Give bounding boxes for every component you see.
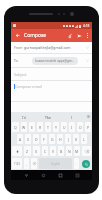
button[interactable]: Voice input (31, 158, 37, 169)
staticText: T (47, 125, 49, 130)
button[interactable]: F (41, 134, 47, 144)
button[interactable]: D (33, 134, 39, 144)
staticText: I (71, 115, 73, 119)
staticText: huawei mobile apps@gm... (35, 59, 75, 63)
button[interactable]: Shift (12, 146, 22, 156)
button[interactable]: L (81, 134, 87, 144)
staticText: English (51, 162, 61, 166)
button[interactable]: O (77, 122, 83, 132)
button[interactable]: huawei mobile apps@gm... (32, 57, 78, 65)
button[interactable]: U (61, 122, 67, 132)
button[interactable]: R (37, 122, 43, 132)
staticText: N (68, 149, 71, 154)
staticText: Q (14, 125, 17, 130)
button[interactable]: G (49, 134, 55, 144)
staticText: V (52, 149, 55, 154)
staticText: Z (26, 149, 29, 154)
staticText: Subject (14, 72, 27, 77)
button[interactable]: From (11, 42, 92, 53)
staticText: I (71, 125, 73, 130)
button[interactable]: Y (53, 122, 59, 132)
button[interactable]: Space (39, 158, 72, 169)
button[interactable]: T (45, 122, 51, 132)
button[interactable]: Attach file (66, 31, 75, 40)
staticText: W (22, 125, 26, 130)
staticText: gurnoopatleejla@gmail.com (24, 45, 71, 50)
staticText: 4:18 (83, 24, 90, 28)
button[interactable]: Subject (11, 68, 92, 80)
staticText: , (26, 162, 27, 166)
staticText: D (35, 137, 38, 142)
button[interactable]: Q (12, 122, 19, 132)
button[interactable]: C (42, 146, 48, 156)
button[interactable]: Recent apps (56, 171, 64, 179)
button[interactable]: Back (22, 171, 30, 179)
button[interactable]: The (36, 112, 60, 121)
staticText: K (75, 137, 78, 142)
staticText: ?123 (14, 162, 20, 166)
staticText: The (45, 115, 51, 119)
button[interactable]: Home (39, 171, 47, 179)
staticText: X (35, 149, 38, 154)
staticText: . (76, 162, 77, 166)
staticText: E (31, 125, 33, 130)
staticText: M (75, 149, 79, 154)
button[interactable]: A (17, 134, 23, 144)
button[interactable]: ?123 (12, 158, 22, 169)
staticText: To (14, 58, 18, 63)
button[interactable]: Backspace (82, 146, 91, 156)
button[interactable]: Send (75, 31, 84, 40)
button[interactable]: Back (13, 31, 22, 40)
button[interactable]: S (25, 134, 31, 144)
button[interactable]: X (33, 146, 40, 156)
button[interactable]: Keyboard settings (84, 112, 92, 121)
button[interactable]: I'd (11, 112, 36, 121)
staticText: U (63, 125, 66, 130)
staticText: R (39, 125, 42, 130)
button[interactable]: I (60, 112, 84, 121)
button[interactable]: N (66, 146, 72, 156)
staticText: Compose email (15, 84, 42, 89)
staticText: L (83, 137, 85, 142)
button[interactable]: V (50, 146, 56, 156)
button[interactable]: J (65, 134, 71, 144)
staticText: I'd (22, 115, 26, 119)
staticText: P (87, 125, 90, 130)
button[interactable]: H (57, 134, 63, 144)
button[interactable]: W (21, 122, 27, 132)
button[interactable]: To (11, 54, 92, 67)
staticText: A (19, 137, 22, 142)
staticText: B (60, 149, 63, 154)
button[interactable]: More options (84, 32, 91, 39)
button[interactable]: Enter (80, 157, 92, 170)
button[interactable]: Compose email (11, 81, 92, 101)
staticText: From (14, 45, 23, 50)
button[interactable]: P (85, 122, 91, 132)
button[interactable]: E (29, 122, 35, 132)
button[interactable]: Hide keyboard (73, 171, 81, 179)
button[interactable]: Z (24, 146, 31, 156)
button[interactable]: K (73, 134, 79, 144)
staticText: G (51, 137, 54, 142)
staticText: S (27, 137, 29, 142)
staticText: J (68, 137, 69, 142)
staticText: F (43, 137, 45, 142)
staticText: O (79, 125, 82, 130)
button[interactable]: , (24, 158, 29, 169)
button[interactable]: I (69, 122, 75, 132)
staticText: Compose (24, 32, 47, 39)
staticText: H (59, 137, 62, 142)
staticText: C (44, 149, 47, 154)
button[interactable]: B (58, 146, 64, 156)
staticText: Y (55, 125, 57, 130)
button[interactable]: M (74, 146, 80, 156)
